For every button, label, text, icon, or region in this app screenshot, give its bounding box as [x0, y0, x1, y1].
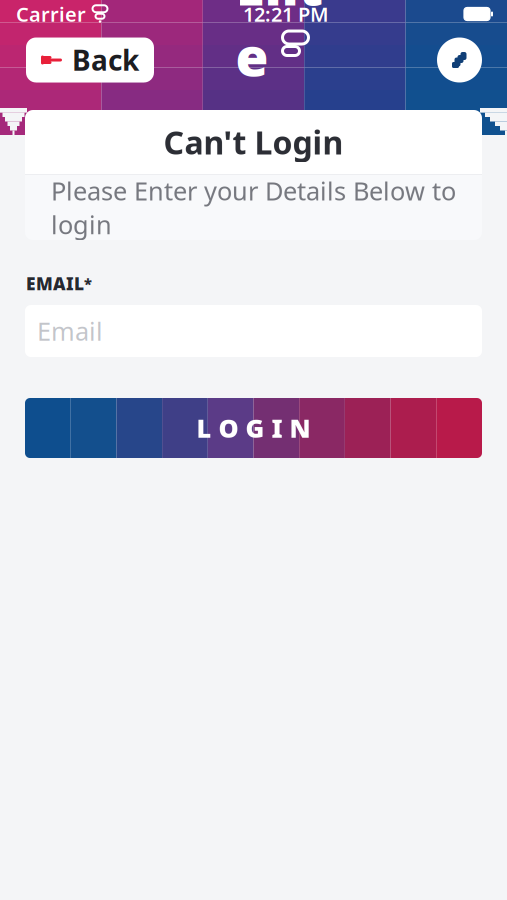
staticText: L O G I N: [196, 411, 310, 445]
button[interactable]: Back: [26, 37, 154, 82]
staticText: Carrier: [16, 1, 86, 27]
staticText: Please Enter your Details Below to login: [51, 174, 456, 241]
staticText: 12:21 PM: [243, 1, 329, 27]
staticText: *: [84, 274, 92, 293]
button[interactable]: L O G I N: [25, 398, 482, 458]
staticText: Back: [72, 41, 139, 79]
button[interactable]: Edit: [437, 37, 482, 82]
staticText: Email: [37, 314, 103, 348]
staticText: Can't Login: [163, 121, 343, 163]
staticText: Elite: [235, 0, 340, 91]
button[interactable]: Email: [25, 305, 482, 357]
staticText: EMAIL: [26, 272, 84, 295]
